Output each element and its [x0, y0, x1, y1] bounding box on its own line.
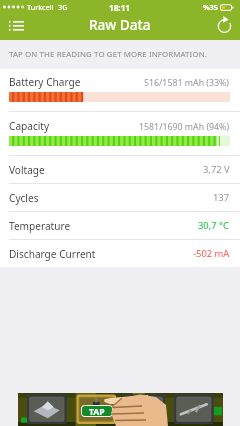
button[interactable]: Battery Charge	[0, 69, 240, 111]
staticText: Voltage	[9, 163, 45, 177]
staticText: Discharge Current	[9, 247, 96, 261]
staticText: Cycles	[9, 191, 39, 205]
staticText: Temperature	[9, 219, 71, 233]
staticText: %35	[203, 2, 218, 12]
staticText: Capacity	[9, 119, 50, 133]
staticText: Turkcell	[27, 2, 54, 12]
staticText: 30,7 °C	[198, 219, 230, 232]
staticText: 3,72 V	[203, 163, 230, 176]
staticText: Battery Charge	[9, 75, 81, 89]
staticText: 137	[213, 191, 230, 204]
staticText: Raw Data	[89, 15, 151, 34]
staticText: TAP ON THE READING TO GET MORE INFORMATI…	[9, 49, 207, 60]
button[interactable]: Advertisement	[18, 393, 223, 426]
button[interactable]: Capacity	[0, 112, 240, 155]
staticText: TAP	[89, 406, 105, 416]
button[interactable]: Discharge Current	[0, 240, 240, 267]
button[interactable]: Menu	[6, 16, 26, 36]
button[interactable]: Refresh	[214, 15, 234, 35]
button[interactable]: Temperature	[0, 212, 240, 239]
button[interactable]: Cycles	[0, 184, 240, 211]
staticText: 1581/1690 mAh (94%)	[139, 121, 230, 133]
staticText: 516/1581 mAh (33%)	[144, 77, 230, 89]
button[interactable]: Voltage	[0, 156, 240, 183]
staticText: 18:11	[109, 2, 131, 13]
staticText: 3G	[58, 2, 68, 12]
staticText: -502 mA	[193, 247, 230, 260]
